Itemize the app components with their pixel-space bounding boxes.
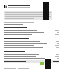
button[interactable] [4,34,59,35]
button[interactable] [4,41,59,42]
button[interactable] [4,30,59,31]
button[interactable] [4,61,59,62]
other: Logo [4,5,7,8]
button[interactable] [4,45,59,46]
button[interactable] [4,54,59,55]
button[interactable] [4,51,59,52]
button[interactable] [4,38,59,39]
button[interactable] [4,32,59,33]
button[interactable]: Certification mark [40,62,44,65]
button[interactable] [4,47,59,48]
button[interactable] [4,43,59,44]
button[interactable]: Logo [4,5,59,8]
button[interactable] [4,68,59,69]
button[interactable] [4,27,59,28]
button[interactable] [4,58,59,59]
button[interactable] [4,56,59,57]
